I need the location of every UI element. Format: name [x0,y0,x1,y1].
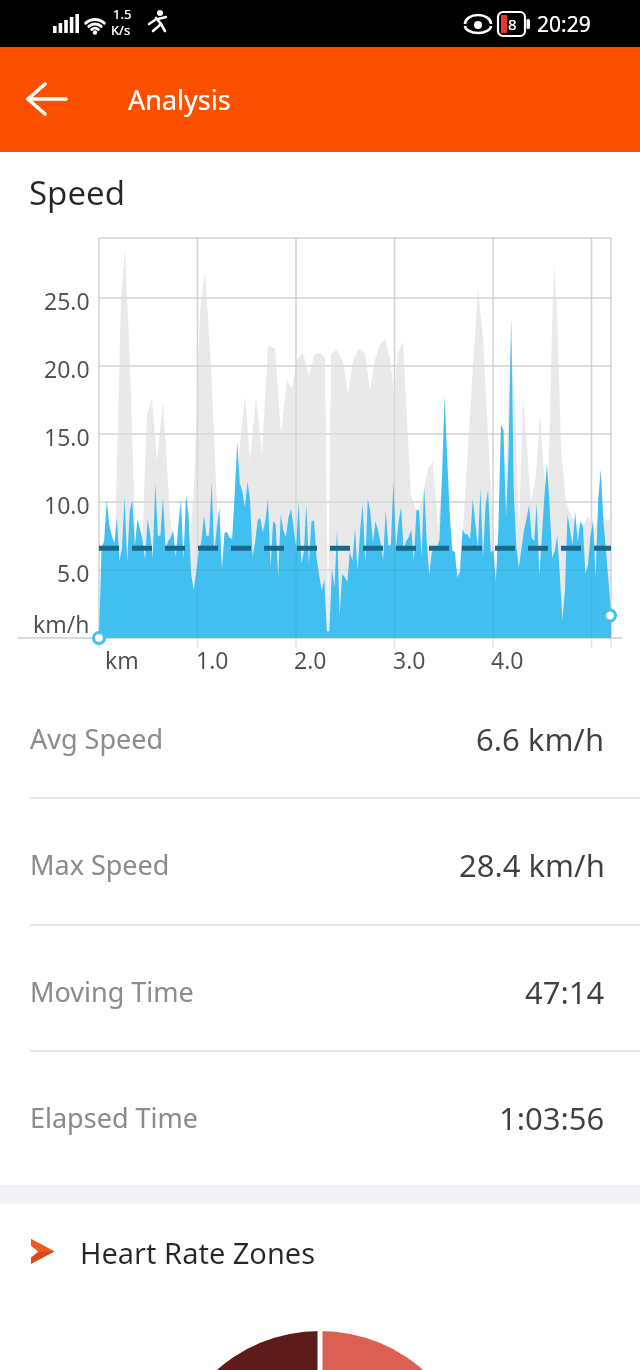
staticText: Max Speed [30,846,170,883]
staticText: 5.0 [57,557,90,588]
staticText: 1:03:56 [499,1097,605,1139]
staticText: 4.0 [491,644,524,675]
staticText: 1.0 [196,644,229,675]
staticText: 15.0 [44,421,90,452]
staticText: 28.4 km/h [459,844,605,886]
staticText: 1.5 [113,5,132,23]
staticText: Speed [29,170,125,214]
staticText: Avg Speed [30,720,164,757]
staticText: Heart Rate Zones [80,1233,316,1272]
staticText: Elapsed Time [30,1099,198,1136]
staticText: 2.0 [294,644,327,675]
button[interactable]: Max Speed [0,806,640,923]
staticText: 8 [508,14,517,34]
staticText: Moving Time [30,973,194,1010]
staticText: 20.0 [44,353,90,384]
staticText: 25.0 [44,285,90,316]
staticText: 47:14 [525,971,605,1013]
button[interactable] [14,69,78,129]
staticText: km [105,644,139,675]
staticText: K/s [111,21,131,39]
button[interactable]: Heart Rate Zones [0,1224,640,1280]
staticText: km/h [33,608,90,639]
staticText: 6.6 km/h [476,718,605,760]
staticText: Analysis [128,81,231,118]
staticText: 3.0 [393,644,426,675]
button[interactable]: Elapsed Time [0,1059,640,1176]
button[interactable]: Moving Time [0,933,640,1050]
staticText: 10.0 [44,489,90,520]
button[interactable]: Avg Speed [0,680,640,797]
staticText: 20:29 [537,10,591,39]
